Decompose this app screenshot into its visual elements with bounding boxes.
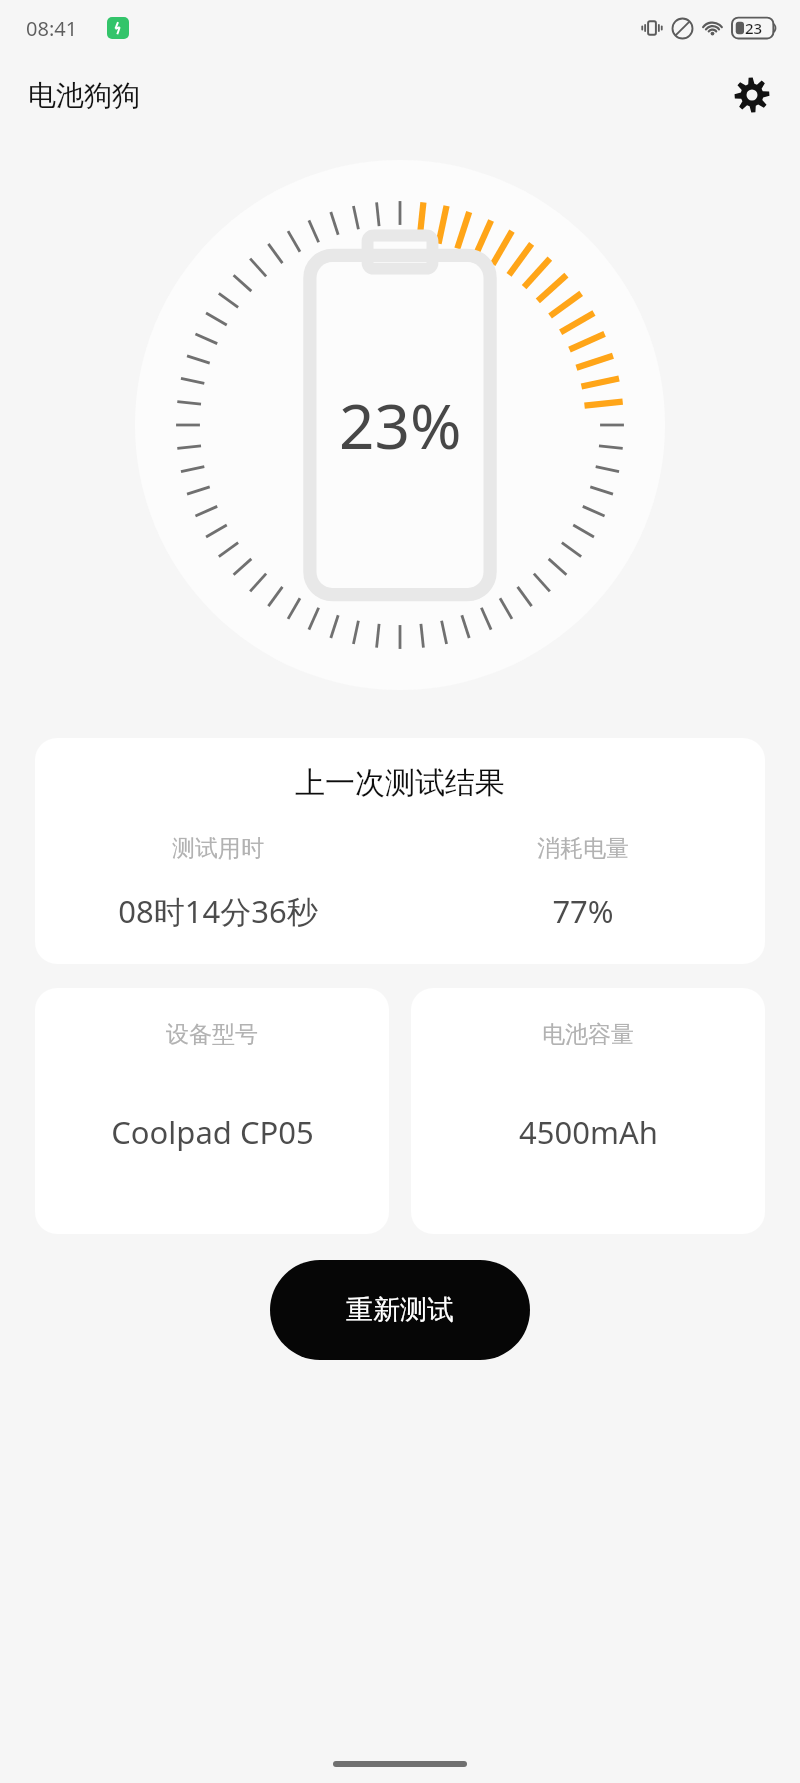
button[interactable]: 设备型号 <box>35 988 389 1234</box>
button[interactable]: 上一次测试结果 <box>35 738 765 964</box>
staticText: 重新测试 <box>346 1293 454 1327</box>
staticText: 08时14分36秒 <box>118 890 318 932</box>
staticText: 消耗电量 <box>537 834 629 863</box>
staticText: 上一次测试结果 <box>35 764 765 802</box>
staticText: 电池狗狗 <box>28 78 140 113</box>
button[interactable]: Settings <box>728 71 776 119</box>
staticText: 77% <box>552 890 614 932</box>
staticText: 23% <box>339 383 462 467</box>
staticText: 测试用时 <box>172 834 264 863</box>
staticText: 设备型号 <box>166 1020 258 1049</box>
staticText: 23 <box>745 18 763 38</box>
staticText: Coolpad CP05 <box>111 1111 314 1153</box>
button[interactable]: 电池容量 <box>411 988 765 1234</box>
staticText: 电池容量 <box>542 1020 634 1049</box>
button[interactable]: 重新测试 <box>270 1260 530 1360</box>
staticText: 4500mAh <box>519 1111 658 1153</box>
staticText: 08:41 <box>26 15 78 42</box>
